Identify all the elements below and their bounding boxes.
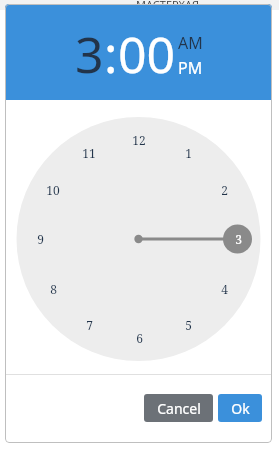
staticText: Cancel [157,399,201,418]
staticText: 10 [46,182,60,198]
staticText: 6 [136,330,143,346]
staticText: 00 [118,20,176,88]
staticText: 12 [132,132,146,148]
button[interactable]: Ok [218,394,262,422]
staticText: Ok [231,399,250,418]
staticText: AM [178,32,203,54]
staticText: 7 [86,317,93,333]
staticText: 11 [82,145,96,161]
staticText: 8 [50,281,57,297]
button[interactable]: Cancel [144,394,213,422]
staticText: 4 [221,281,228,297]
button[interactable]: Clock face, hour selector [5,100,272,374]
button[interactable]: 3 [75,20,104,88]
button[interactable]: AM [178,32,203,54]
staticText: 2 [221,182,228,198]
staticText: 9 [37,231,44,247]
staticText: 5 [185,317,192,333]
staticText: 3 [235,231,242,247]
staticText: : [104,20,118,88]
button[interactable]: PM [178,57,203,79]
staticText: МАСТЕРХАЯ [136,0,199,12]
staticText: PM [178,57,203,79]
staticText: 3 [75,20,104,88]
staticText: 1 [185,145,192,161]
button[interactable]: 00 [118,20,176,88]
